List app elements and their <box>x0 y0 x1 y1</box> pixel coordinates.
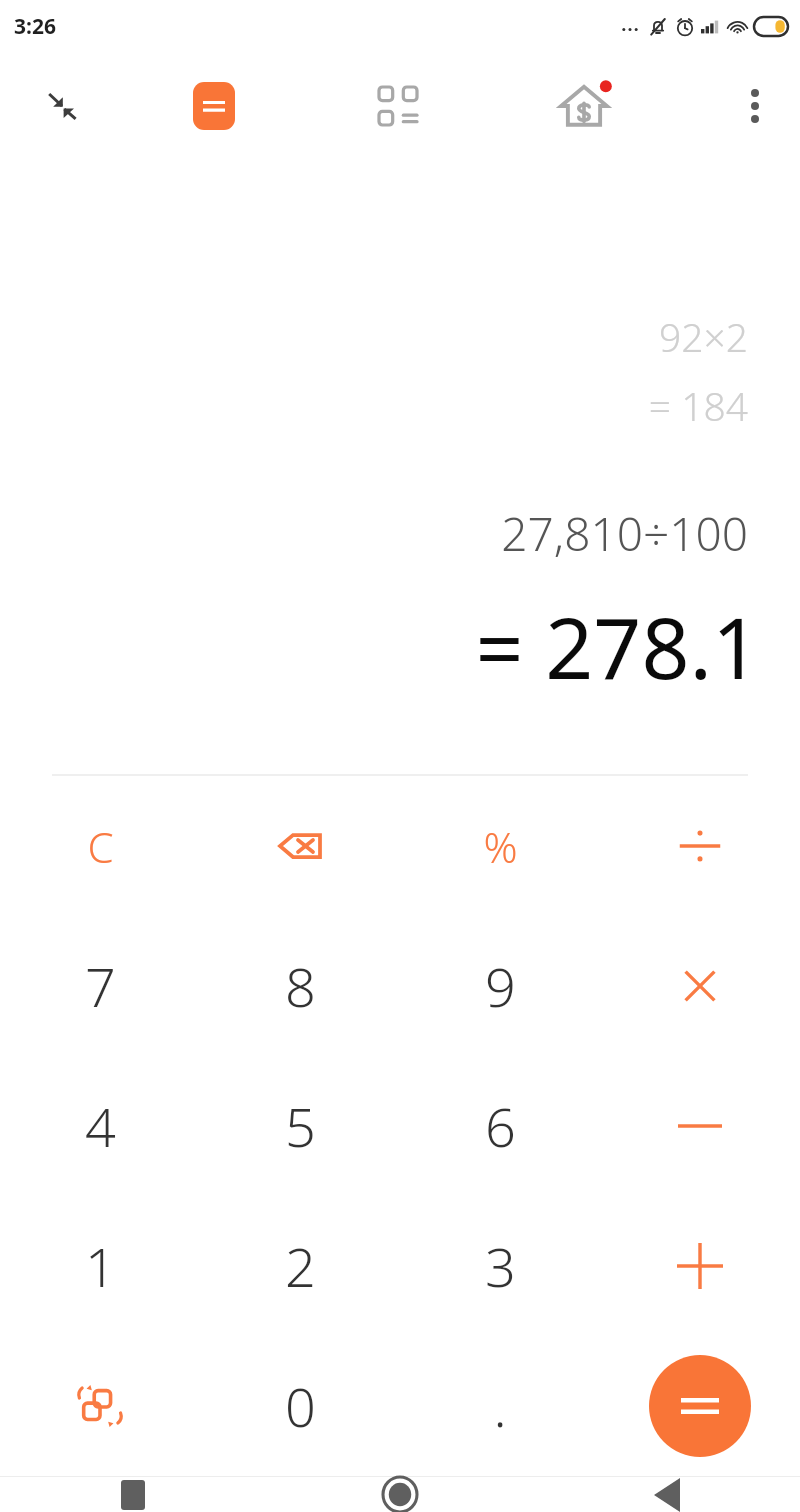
staticText: 5 <box>285 1089 316 1163</box>
button[interactable]: Recents <box>0 1477 266 1512</box>
button[interactable]: More options <box>722 73 788 139</box>
button[interactable]: Collapse <box>26 70 98 142</box>
button[interactable]: % <box>400 776 600 916</box>
button[interactable]: 0 <box>200 1336 400 1476</box>
staticText: 9 <box>485 949 516 1023</box>
staticText: 0 <box>285 1369 316 1443</box>
button[interactable]: Mortgage <box>546 68 622 144</box>
staticText: 7 <box>85 949 116 1023</box>
button[interactable]: 5 <box>200 1056 400 1196</box>
button[interactable]: 6 <box>400 1056 600 1196</box>
button[interactable]: 4 <box>0 1056 200 1196</box>
button[interactable]: Back <box>533 1477 800 1512</box>
button[interactable]: 2 <box>200 1196 400 1336</box>
staticText: % <box>483 818 518 875</box>
button[interactable]: Minus <box>600 1056 800 1196</box>
button[interactable]: Multiply <box>600 916 800 1056</box>
button[interactable]: Divide <box>600 776 800 916</box>
staticText: 92×2 <box>658 310 748 363</box>
button[interactable]: 7 <box>0 916 200 1056</box>
button[interactable]: 9 <box>400 916 600 1056</box>
button[interactable]: 8 <box>200 916 400 1056</box>
button[interactable]: All tools <box>362 70 434 142</box>
staticText: 1 <box>85 1229 116 1303</box>
staticText: 3 <box>485 1229 516 1303</box>
button[interactable]: Plus <box>600 1196 800 1336</box>
button[interactable]: Convert units <box>0 1336 200 1476</box>
button[interactable]: C <box>0 776 200 916</box>
staticText: 2 <box>285 1229 316 1303</box>
staticText: 3:26 <box>14 12 56 41</box>
button[interactable]: Equals <box>649 1355 751 1457</box>
staticText: = 278.1 <box>475 589 760 703</box>
button[interactable]: . <box>400 1336 600 1476</box>
button[interactable]: Home <box>266 1477 533 1512</box>
button[interactable]: Calculator <box>178 70 250 142</box>
staticText: 6 <box>485 1089 516 1163</box>
staticText: 8 <box>285 949 316 1023</box>
staticText: . <box>493 1369 507 1443</box>
staticText: = 184 <box>648 379 748 432</box>
button[interactable]: 3 <box>400 1196 600 1336</box>
button[interactable]: 1 <box>0 1196 200 1336</box>
staticText: 27,810÷100 <box>501 502 748 565</box>
staticText: C <box>87 818 114 875</box>
button[interactable]: Backspace <box>200 776 400 916</box>
staticText: 4 <box>85 1089 116 1163</box>
